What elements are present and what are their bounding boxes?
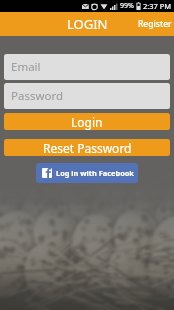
staticText: LOGIN — [67, 15, 108, 33]
staticText: Reset Password — [43, 140, 132, 156]
button[interactable]: Reset Password — [4, 139, 170, 156]
staticText: Password — [11, 88, 64, 104]
staticText: 2:37 PM — [143, 1, 172, 11]
button[interactable]: Log in with Facebook — [36, 163, 138, 183]
staticText: Email — [11, 59, 41, 75]
staticText: 99% — [120, 1, 134, 11]
staticText: Register — [138, 18, 172, 30]
button[interactable]: Login — [4, 113, 170, 130]
staticText: Login — [71, 114, 103, 130]
staticText: Log in with Facebook — [56, 168, 134, 178]
button[interactable]: Email — [4, 54, 170, 80]
button[interactable]: Password — [4, 83, 170, 109]
button[interactable]: Register — [134, 14, 174, 34]
